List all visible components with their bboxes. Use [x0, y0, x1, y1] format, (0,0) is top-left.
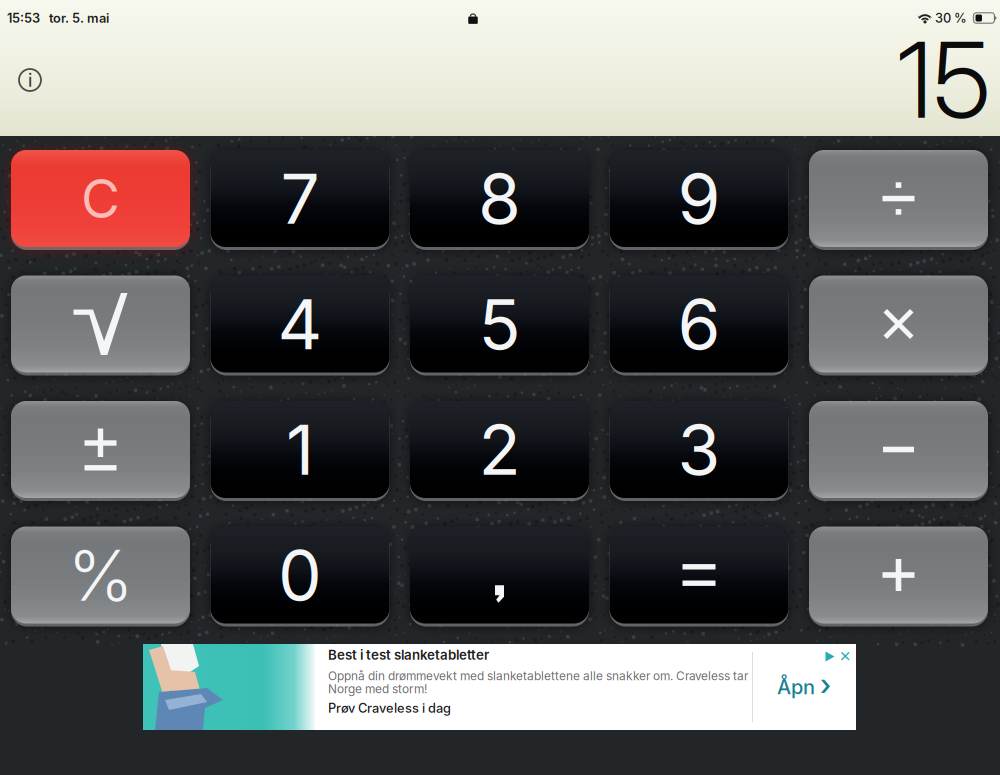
- button[interactable]: %: [11, 526, 190, 623]
- button[interactable]: [809, 401, 988, 498]
- staticText: 6: [677, 282, 720, 366]
- button[interactable]: [809, 526, 988, 623]
- staticText: tor. 5. mai: [40, 10, 109, 26]
- button[interactable]: 9: [609, 150, 788, 247]
- staticText: ✕: [839, 648, 851, 665]
- button[interactable]: [809, 275, 988, 372]
- button[interactable]: [410, 526, 589, 623]
- staticText: Norge med storm!: [328, 682, 427, 696]
- staticText: 9: [677, 157, 720, 240]
- staticText: 7: [280, 157, 319, 240]
- staticText: 3: [677, 408, 720, 491]
- staticText: Prøv Craveless i dag: [328, 700, 451, 716]
- button[interactable]: [11, 275, 190, 372]
- staticText: Best i test slanketabletter: [328, 647, 489, 663]
- staticText: 8: [478, 157, 521, 240]
- staticText: 1: [286, 408, 314, 491]
- button[interactable]: 1: [210, 401, 389, 498]
- staticText: Åpn: [777, 675, 815, 699]
- button[interactable]: 4: [210, 275, 389, 372]
- button[interactable]: 8: [410, 150, 589, 247]
- button[interactable]: 7: [210, 150, 389, 247]
- button[interactable]: [11, 401, 190, 498]
- button[interactable]: 0: [210, 526, 389, 623]
- staticText: 0: [278, 533, 322, 617]
- button[interactable]: [809, 150, 988, 247]
- button[interactable]: Best i test slanketabletter: [143, 644, 856, 730]
- staticText: 4: [277, 282, 322, 366]
- button[interactable]: 5: [410, 275, 589, 372]
- staticText: Oppnå din drømmevekt med slanketabletten…: [328, 669, 748, 683]
- button[interactable]: [609, 526, 788, 623]
- staticText: 15: [897, 17, 991, 143]
- staticText: C: [81, 166, 120, 231]
- button[interactable]: Info: [8, 58, 52, 102]
- staticText: 2: [478, 408, 520, 491]
- staticText: %: [67, 532, 133, 618]
- button[interactable]: 2: [410, 401, 589, 498]
- staticText: ›: [820, 667, 831, 703]
- staticText: 15:53: [7, 10, 40, 26]
- staticText: 30 %: [932, 10, 967, 26]
- button[interactable]: 3: [609, 401, 788, 498]
- staticText: i: [28, 70, 32, 91]
- button[interactable]: 6: [609, 275, 788, 372]
- staticText: 5: [478, 282, 520, 366]
- button[interactable]: C: [11, 150, 190, 247]
